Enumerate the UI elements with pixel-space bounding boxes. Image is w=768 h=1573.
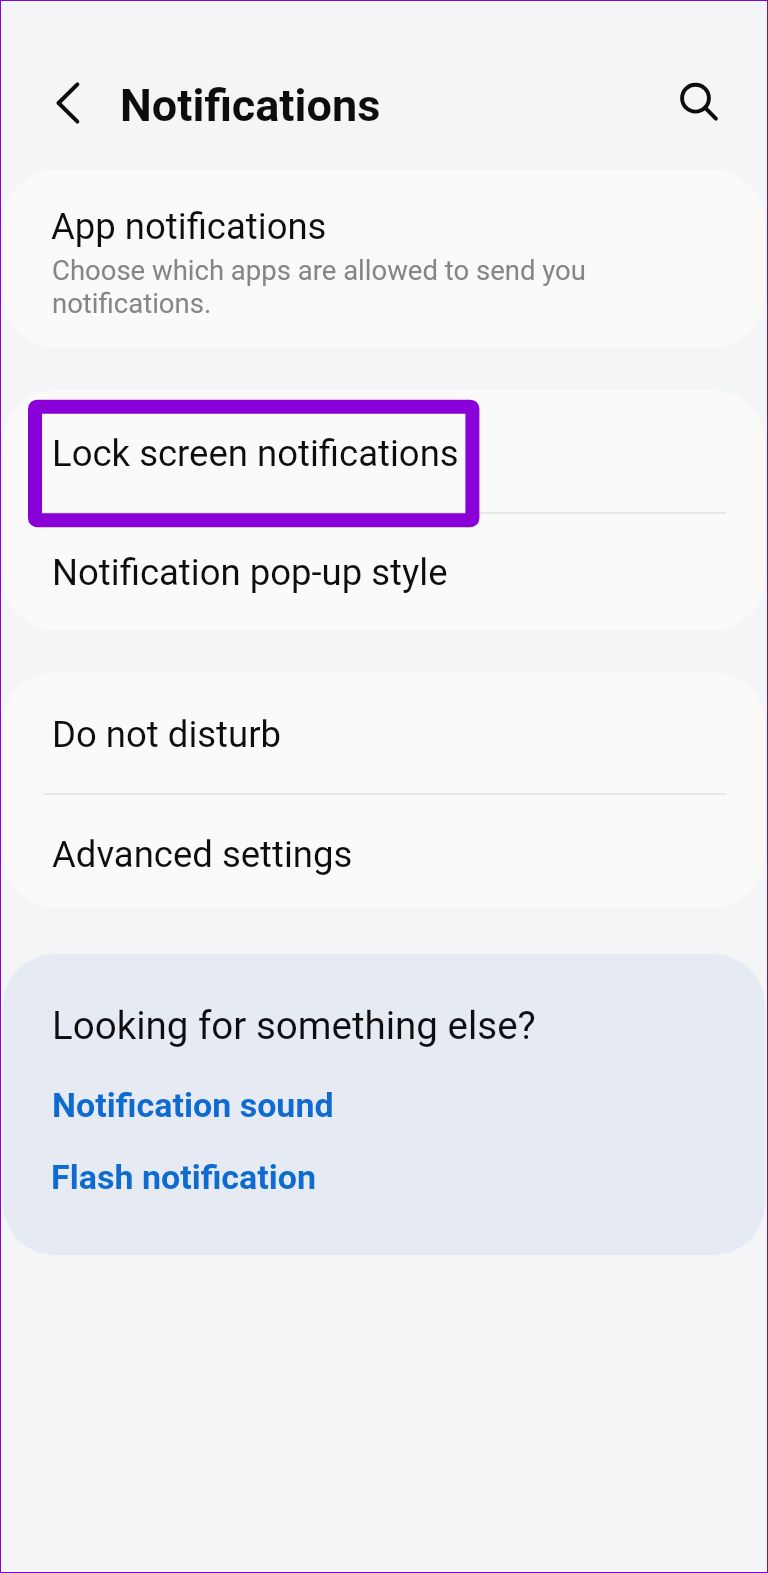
staticText: App notifications [51,205,327,248]
button[interactable]: Do not disturb [2,672,766,791]
button[interactable]: Lock screen notifications [2,390,766,511]
button[interactable] [2,1149,766,1209]
staticText: Lock screen notifications [52,432,459,475]
staticText: Do not disturb [52,713,282,756]
button[interactable]: Notification pop-up style [2,511,766,630]
staticText: Choose which apps are allowed to send yo… [52,254,608,320]
staticText: Looking for something else? [52,1003,536,1048]
button[interactable] [2,1077,766,1137]
staticText: Notification pop-up style [52,551,448,594]
button[interactable]: Back [30,66,104,140]
button[interactable] [2,170,766,348]
button[interactable]: Search [657,60,735,138]
staticText: Flash notification [51,1157,317,1197]
button[interactable]: Advanced settings [2,791,766,908]
staticText: Notification sound [52,1085,334,1125]
staticText: Advanced settings [52,833,353,876]
staticText: Notifications [120,79,381,132]
